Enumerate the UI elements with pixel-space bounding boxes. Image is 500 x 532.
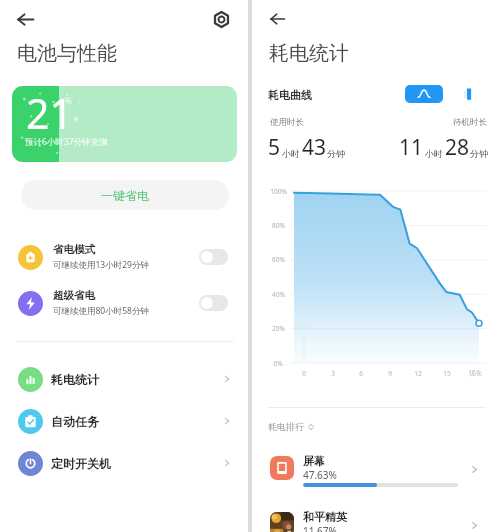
- staticText: %: [65, 95, 72, 106]
- staticText: 可继续使用80小时58分钟: [53, 305, 149, 317]
- staticText: 21: [26, 86, 73, 141]
- staticText: 分钟: [470, 148, 488, 159]
- button[interactable]: 屏幕: [262, 451, 494, 499]
- staticText: 待机时长: [453, 117, 487, 128]
- staticText: 小时: [282, 148, 300, 159]
- staticText: 定时开关机: [51, 456, 111, 471]
- button[interactable]: Curve chart: [405, 85, 443, 103]
- staticText: 耗电曲线: [268, 88, 312, 102]
- staticText: 100%: [270, 187, 287, 196]
- staticText: 和平精英: [303, 510, 347, 524]
- staticText: 省电模式: [53, 243, 95, 256]
- staticText: 9: [388, 369, 392, 378]
- staticText: 小时: [425, 148, 443, 159]
- staticText: 5: [268, 133, 281, 162]
- button[interactable]: Back: [263, 5, 291, 33]
- staticText: 60%: [272, 255, 285, 264]
- staticText: 11.67%: [303, 524, 337, 532]
- button[interactable]: 超级省电: [12, 285, 236, 321]
- button[interactable]: 省电模式 toggle: [199, 249, 228, 265]
- button[interactable]: 21: [12, 86, 237, 162]
- staticText: 6: [359, 369, 363, 378]
- staticText: 耗电排行: [268, 421, 304, 432]
- staticText: 自动任务: [51, 414, 99, 429]
- button[interactable]: Back: [11, 5, 39, 33]
- staticText: 可继续使用13小时29分钟: [53, 259, 149, 271]
- staticText: 12: [414, 369, 422, 378]
- staticText: 预计6小时37分钟充满: [25, 136, 108, 148]
- staticText: 超级省电: [53, 289, 95, 302]
- staticText: 使用时长: [270, 117, 304, 128]
- button[interactable]: 和平精英: [262, 507, 494, 532]
- staticText: 0: [302, 369, 306, 378]
- staticText: 40%: [272, 290, 285, 299]
- staticText: 20%: [272, 324, 285, 333]
- staticText: 28: [445, 133, 470, 162]
- button[interactable]: 一键省电: [21, 180, 229, 210]
- button[interactable]: 定时开关机: [12, 446, 236, 480]
- staticText: 耗电统计: [269, 41, 349, 66]
- staticText: 3: [331, 369, 335, 378]
- button[interactable]: 耗电排行: [268, 421, 312, 432]
- staticText: 电池与性能: [17, 41, 117, 66]
- button[interactable]: Settings: [207, 5, 235, 33]
- button[interactable]: 省电模式: [12, 239, 236, 275]
- staticText: 43: [302, 133, 327, 162]
- staticText: 现在: [469, 369, 482, 377]
- staticText: 耗电统计: [51, 372, 99, 387]
- staticText: 分钟: [327, 148, 345, 159]
- staticText: 一键省电: [101, 188, 149, 203]
- button[interactable]: 超级省电 toggle: [199, 295, 228, 311]
- button[interactable]: 耗电统计: [12, 362, 236, 396]
- staticText: 47.63%: [303, 468, 337, 482]
- staticText: 0%: [273, 359, 283, 368]
- staticText: 11: [399, 133, 424, 162]
- button[interactable]: 自动任务: [12, 404, 236, 438]
- staticText: 80%: [272, 221, 285, 230]
- staticText: 15: [443, 369, 451, 378]
- staticText: 屏幕: [303, 454, 325, 468]
- button[interactable]: Bar chart: [449, 85, 487, 103]
